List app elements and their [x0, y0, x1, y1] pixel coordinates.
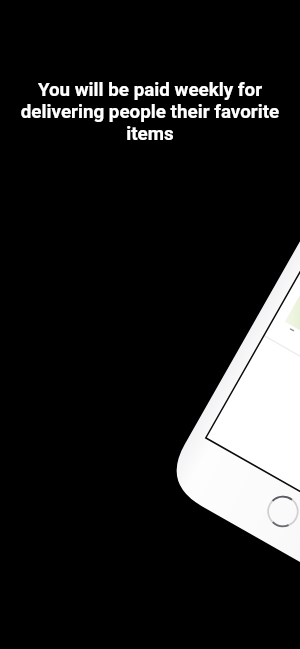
- staticText: You will be paid weekly for delivering p…: [12, 79, 288, 145]
